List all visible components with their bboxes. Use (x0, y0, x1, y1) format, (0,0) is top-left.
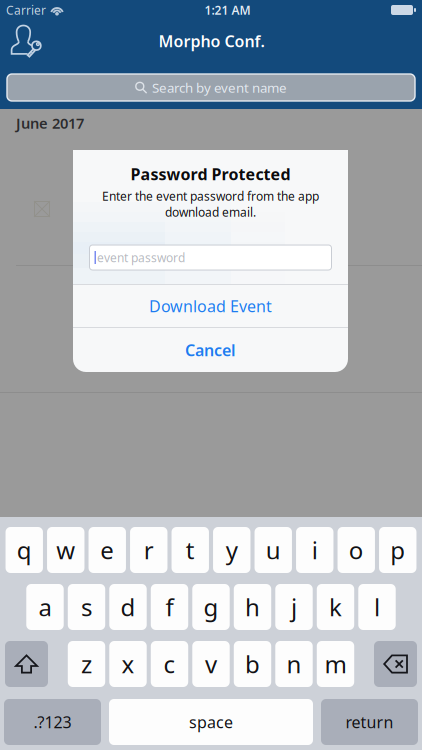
button[interactable]: t (172, 527, 209, 573)
button[interactable]: l (358, 584, 396, 630)
button[interactable]: h (234, 584, 271, 630)
staticText: z (81, 648, 92, 680)
button[interactable]: f (151, 584, 188, 630)
staticText: v (205, 648, 217, 680)
button[interactable]: p (379, 527, 416, 573)
button[interactable]: e (89, 527, 126, 573)
staticText: k (329, 591, 342, 623)
button[interactable]: g (192, 584, 230, 630)
button[interactable]: z (68, 641, 105, 687)
button[interactable]: i (296, 527, 333, 573)
button[interactable]: return (321, 699, 418, 745)
button[interactable] (0, 266, 422, 392)
staticText: return (345, 711, 393, 733)
staticText: Download Event (149, 295, 272, 317)
staticText: o (349, 534, 364, 566)
button[interactable] (0, 137, 422, 265)
staticText: Carrier (6, 2, 46, 18)
staticText: p (390, 534, 405, 566)
staticText: c (163, 648, 175, 680)
button[interactable]: j (275, 584, 313, 630)
staticText: q (17, 534, 32, 566)
staticText: u (266, 534, 281, 566)
button[interactable]: Shift (5, 641, 48, 687)
button[interactable]: r (130, 527, 167, 573)
button[interactable]: n (275, 641, 313, 687)
button[interactable]: Account (0, 21, 49, 61)
staticText: .?123 (33, 711, 71, 733)
button[interactable]: y (213, 527, 250, 573)
staticText: b (245, 648, 260, 680)
staticText: s (81, 591, 92, 623)
staticText: d (120, 591, 135, 623)
staticText: l (374, 591, 380, 623)
button[interactable]: space (109, 699, 313, 745)
button[interactable]: Cancel (73, 328, 348, 372)
staticText: June 2017 (16, 113, 84, 133)
staticText: Morpho Conf. (158, 30, 264, 52)
staticText: space (189, 711, 233, 733)
button[interactable]: Download Event (73, 285, 348, 327)
button[interactable]: v (192, 641, 230, 687)
button[interactable]: x (109, 641, 147, 687)
staticText: y (226, 534, 238, 566)
staticText: t (186, 534, 195, 566)
button[interactable]: Delete (374, 641, 417, 687)
staticText: x (121, 648, 134, 680)
staticText: e (100, 534, 114, 566)
staticText: 1:21 AM (204, 2, 250, 18)
staticText: f (165, 591, 173, 623)
button[interactable]: u (255, 527, 292, 573)
button[interactable]: k (317, 584, 354, 630)
staticText: m (324, 648, 346, 680)
button[interactable]: c (151, 641, 188, 687)
staticText: r (144, 534, 154, 566)
staticText: w (56, 534, 75, 566)
staticText: Cancel (185, 339, 236, 361)
staticText: download email. (165, 204, 256, 220)
button[interactable]: m (317, 641, 354, 687)
button[interactable]: o (338, 527, 375, 573)
button[interactable]: .?123 (4, 699, 101, 745)
staticText: n (286, 648, 301, 680)
staticText: Search by event name (152, 79, 287, 96)
staticText: j (291, 591, 297, 623)
image (34, 201, 50, 217)
staticText: h (245, 591, 260, 623)
button[interactable]: w (47, 527, 84, 573)
staticText: Password Protected (130, 163, 290, 185)
button[interactable]: d (109, 584, 147, 630)
staticText: Enter the event password from the app (102, 188, 319, 204)
staticText: g (203, 591, 218, 623)
button[interactable]: a (26, 584, 64, 630)
button[interactable]: b (234, 641, 271, 687)
staticText: i (312, 534, 318, 566)
staticText: a (38, 591, 51, 623)
staticText: event password (97, 249, 185, 265)
button[interactable]: s (68, 584, 105, 630)
button[interactable]: q (6, 527, 43, 573)
